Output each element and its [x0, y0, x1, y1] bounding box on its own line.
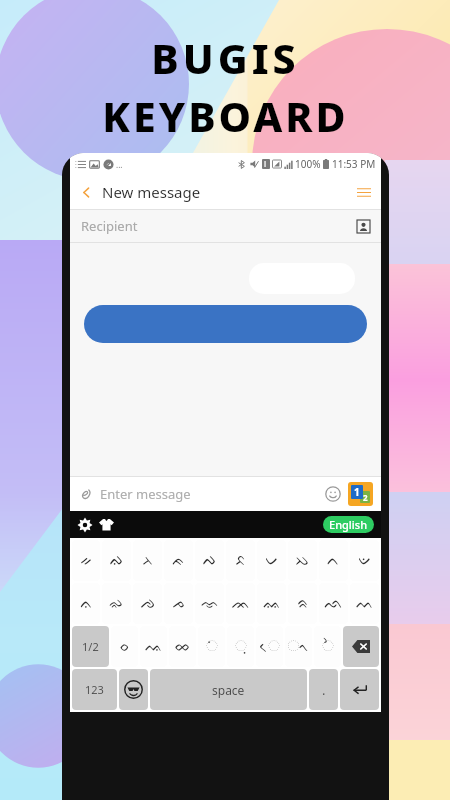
button[interactable]: ᨘ [227, 626, 254, 667]
button[interactable]: ᨌ [133, 583, 162, 624]
staticText: 1/2 [82, 639, 99, 654]
staticText: ᨖ [174, 639, 191, 654]
staticText: ᨅ [235, 553, 246, 568]
button[interactable]: Pick contact [357, 220, 370, 233]
button[interactable]: ᨆ [257, 540, 286, 581]
staticText: ᨒ [324, 596, 343, 611]
button[interactable]: ᨇ [288, 540, 317, 581]
staticText: KEYBOARD [102, 88, 349, 144]
staticText: ᨂ [142, 553, 154, 568]
staticText: ᨐ [263, 596, 281, 611]
staticText: ᨃ [172, 553, 185, 568]
button[interactable]: Attach [78, 487, 93, 502]
staticText: ᨄ [202, 553, 217, 568]
button[interactable]: ᨃ [164, 540, 193, 581]
button[interactable]: Emoji [325, 486, 341, 502]
button[interactable]: Menu [347, 175, 381, 209]
button[interactable]: ᨄ [195, 540, 224, 581]
staticText: ᨎ [201, 596, 219, 611]
staticText: ᨙ [260, 639, 280, 654]
button[interactable]: ᨋ [102, 583, 131, 624]
staticText: ᨛ [322, 639, 334, 654]
staticText: 1 [354, 485, 360, 499]
button[interactable]: ᨅ [226, 540, 255, 581]
staticText: ᨆ [265, 553, 279, 568]
button[interactable]: space [150, 669, 307, 710]
staticText: . [322, 681, 326, 699]
staticText: BUGIS [151, 30, 300, 86]
staticText: Enter message [100, 485, 191, 503]
button[interactable]: ᨀ [72, 540, 100, 581]
button[interactable]: Recipient [70, 210, 381, 242]
staticText: 100% [295, 157, 321, 171]
staticText: ᨉ [358, 553, 372, 568]
button[interactable]: ᨁ [102, 540, 131, 581]
button[interactable]: ᨙ [256, 626, 283, 667]
staticText: ᨇ [295, 553, 310, 568]
button[interactable]: 123 [72, 669, 117, 710]
staticText: ᨘ [235, 639, 247, 654]
staticText: ᨈ [327, 553, 340, 568]
button[interactable]: ᨂ [133, 540, 162, 581]
button[interactable]: . [309, 669, 338, 710]
staticText: ᨗ [206, 639, 218, 654]
staticText: ᨍ [172, 596, 186, 611]
staticText: ᨑ [297, 596, 309, 611]
staticText: English [329, 517, 368, 532]
staticText: ᨊ [80, 596, 93, 611]
staticText: New message [102, 182, 201, 202]
button[interactable]: ᨈ [319, 540, 348, 581]
staticText: space [212, 682, 245, 698]
button[interactable]: ᨉ [350, 540, 379, 581]
staticText: ᨓ [356, 596, 374, 611]
staticText: 11:53 PM [332, 157, 376, 171]
button[interactable]: ᨕ [140, 626, 167, 667]
button[interactable]: Emoji [119, 669, 148, 710]
button[interactable]: Enter [340, 669, 379, 710]
staticText: ᨚ [287, 639, 310, 654]
button[interactable]: Backspace [343, 626, 379, 667]
staticText: ᨔ [119, 639, 130, 654]
button[interactable]: Select SIM [348, 482, 373, 506]
staticText: ᨋ [109, 596, 124, 611]
button[interactable]: ᨏ [226, 583, 255, 624]
button[interactable]: ᨖ [169, 626, 196, 667]
button[interactable]: ᨐ [257, 583, 286, 624]
button[interactable] [84, 305, 367, 343]
staticText: ᨁ [109, 553, 124, 568]
staticText: ... [116, 159, 123, 170]
button[interactable]: ᨓ [350, 583, 379, 624]
staticText: ᨌ [140, 596, 156, 611]
staticText: ᨏ [231, 596, 250, 611]
button[interactable]: ᨛ [314, 626, 341, 667]
button[interactable]: ᨔ [111, 626, 138, 667]
staticText: ᨀ [80, 553, 93, 568]
button[interactable]: ᨍ [164, 583, 193, 624]
button[interactable]: 1/2 [72, 626, 109, 667]
button[interactable]: ᨊ [72, 583, 100, 624]
button[interactable]: Theme [98, 516, 115, 533]
button[interactable]: ᨒ [319, 583, 348, 624]
button[interactable]: ᨚ [285, 626, 312, 667]
button[interactable]: Back [70, 175, 102, 209]
button[interactable]: ᨎ [195, 583, 224, 624]
staticText: 123 [85, 682, 104, 697]
staticText: Recipient [81, 217, 138, 235]
staticText: ᨕ [145, 639, 163, 654]
button[interactable]: ᨑ [288, 583, 317, 624]
button[interactable]: Keyboard settings [77, 517, 93, 533]
staticText: 2 [363, 492, 368, 503]
button[interactable]: ᨗ [198, 626, 225, 667]
button[interactable]: English [323, 516, 374, 533]
